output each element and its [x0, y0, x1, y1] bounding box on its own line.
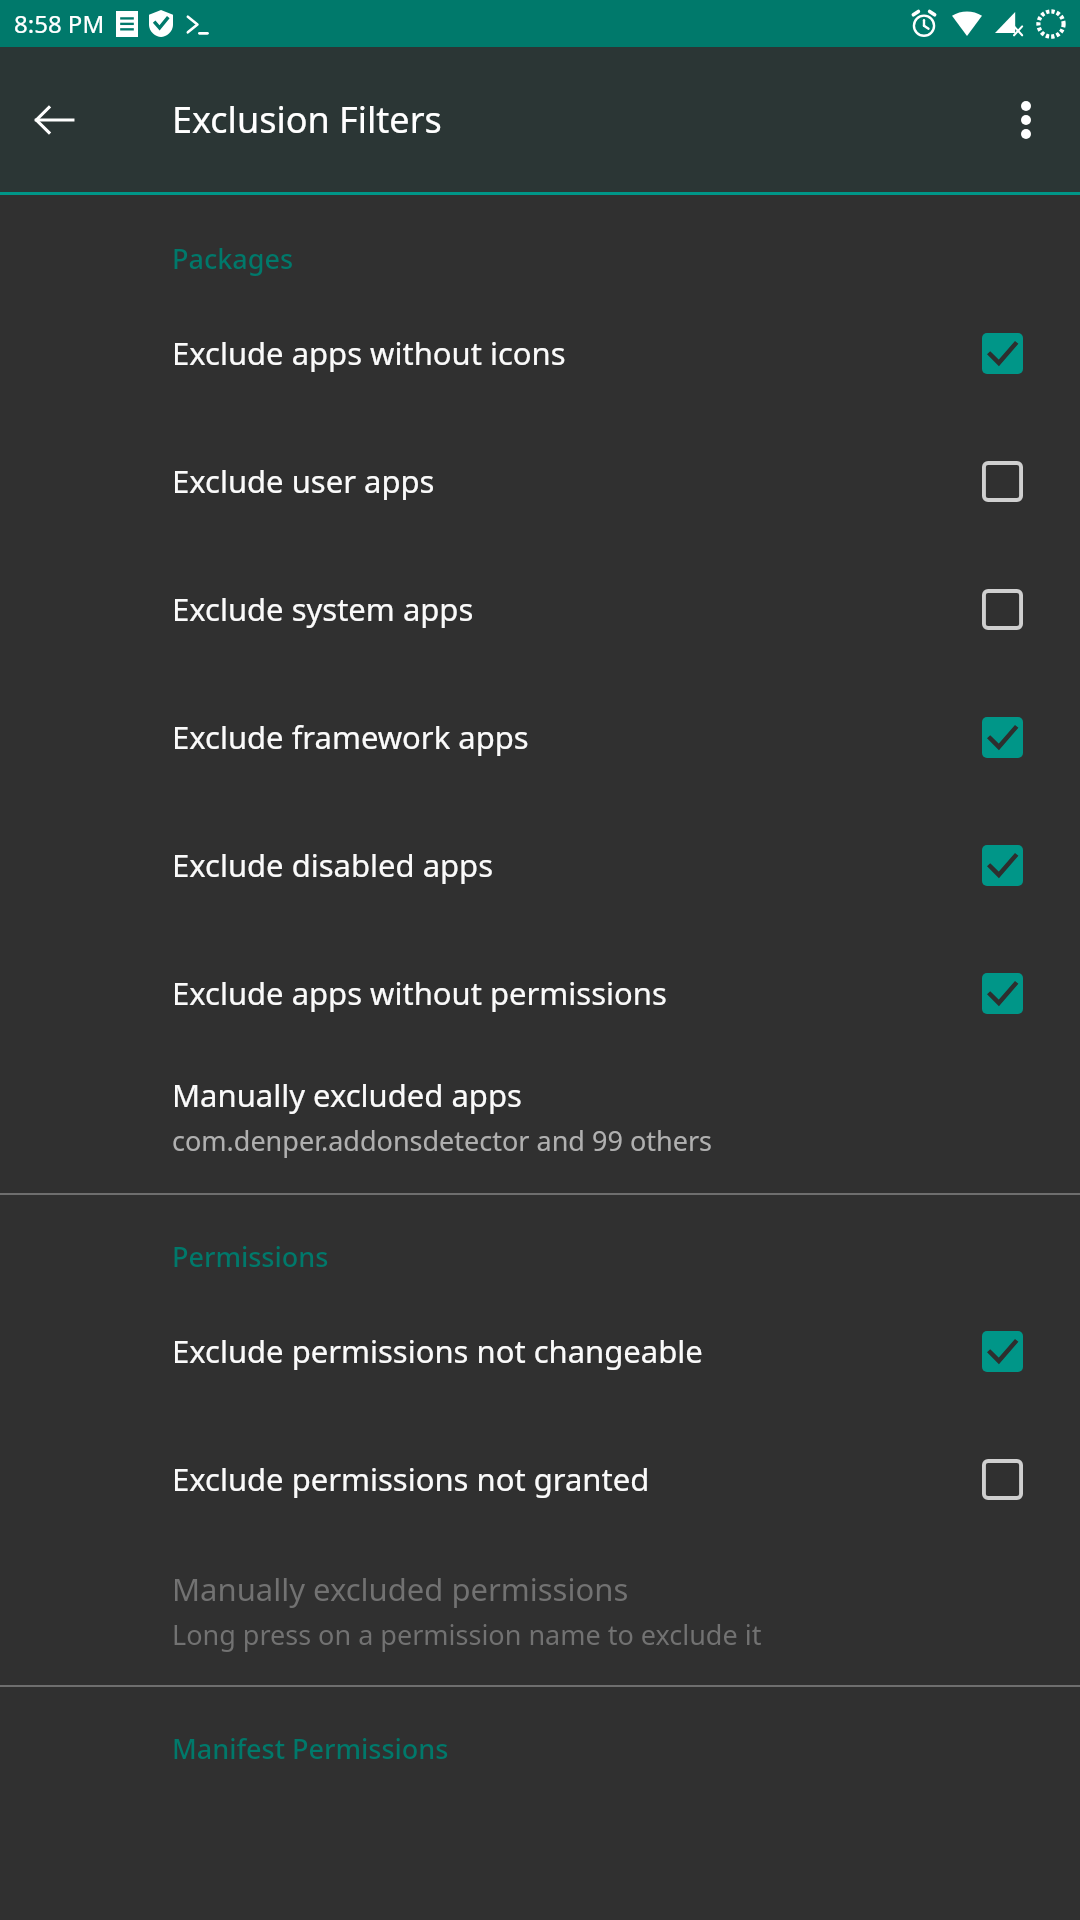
button[interactable]: Back [22, 88, 86, 152]
staticText: Exclude apps without icons [172, 332, 982, 374]
button[interactable]: Exclude apps without permissions [0, 929, 1080, 1057]
staticText: Packages [172, 240, 294, 277]
button[interactable]: Exclude framework apps [0, 673, 1080, 801]
button[interactable]: Exclude user apps [0, 417, 1080, 545]
staticText: Exclude apps without permissions [172, 972, 982, 1014]
staticText: Exclude system apps [172, 588, 982, 630]
staticText: Long press on a permission name to exclu… [172, 1616, 762, 1653]
staticText: Manually excluded apps [172, 1074, 522, 1116]
button[interactable]: Exclude system apps [0, 545, 1080, 673]
staticText: Exclude permissions not changeable [172, 1330, 982, 1372]
staticText: Exclude disabled apps [172, 844, 982, 886]
button[interactable]: Exclude apps without icons [0, 289, 1080, 417]
button[interactable]: More options [994, 88, 1058, 152]
button[interactable]: Manually excluded apps [0, 1057, 1080, 1175]
button[interactable]: Exclude disabled apps [0, 801, 1080, 929]
staticText: Exclude permissions not granted [172, 1458, 982, 1500]
staticText: Manually excluded permissions [172, 1568, 629, 1610]
staticText: Exclusion Filters [172, 95, 442, 144]
staticText: Exclude user apps [172, 460, 982, 502]
staticText: Exclude framework apps [172, 716, 982, 758]
button[interactable]: Exclude permissions not granted [0, 1415, 1080, 1543]
button[interactable]: Exclude permissions not changeable [0, 1287, 1080, 1415]
staticText: 8:58 PM [14, 7, 105, 40]
staticText: Manifest Permissions [172, 1730, 449, 1767]
button[interactable]: Manually excluded permissions [0, 1551, 1080, 1669]
staticText: com.denper.addonsdetector and 99 others [172, 1122, 712, 1159]
staticText: Permissions [172, 1238, 329, 1275]
